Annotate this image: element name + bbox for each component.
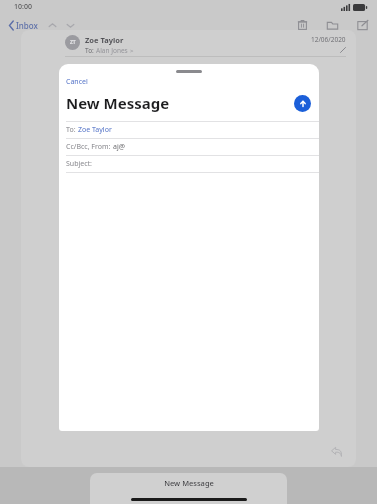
button[interactable]: Delete	[296, 19, 309, 32]
button[interactable]: Cancel	[59, 76, 95, 89]
button[interactable]: Cc/Bcc, From:	[59, 139, 319, 155]
staticText: 12/06/2020	[311, 35, 346, 44]
button[interactable]: Move to folder	[326, 19, 339, 32]
button[interactable]: Send	[294, 95, 311, 112]
staticText: Inbox	[16, 20, 38, 31]
staticText: New Message	[66, 93, 294, 113]
button[interactable]: Next message	[65, 20, 76, 31]
staticText: To:	[85, 46, 96, 55]
staticText: Zoe Taylor	[85, 35, 124, 45]
staticText: Alan Jones	[96, 46, 130, 55]
staticText: Subject:	[66, 159, 92, 169]
staticText: >	[130, 47, 134, 55]
button[interactable]: New Message	[90, 473, 287, 504]
staticText: ZT	[70, 39, 76, 46]
staticText: Cancel	[66, 77, 88, 87]
button[interactable]: Subject:	[59, 156, 319, 172]
staticText: Cc/Bcc, From:	[66, 142, 113, 152]
staticText: Zoe Taylor	[78, 125, 112, 135]
staticText: New Message	[164, 478, 214, 488]
button[interactable]: Previous message	[47, 20, 58, 31]
button[interactable]: Inbox	[6, 17, 41, 34]
staticText: 10:00	[14, 2, 32, 12]
button[interactable]: Compose	[356, 19, 369, 32]
button[interactable]: To:	[59, 122, 319, 138]
staticText: To:	[66, 125, 78, 135]
staticText: aj@	[113, 142, 126, 152]
